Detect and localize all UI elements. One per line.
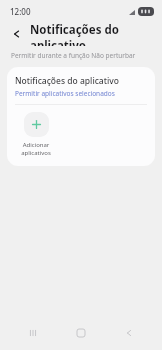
staticText: Permitir durante a função Não perturbar	[11, 51, 136, 60]
staticText: Permitir aplicativos selecionados	[15, 89, 115, 98]
staticText: Notificações do aplicativo	[15, 75, 119, 87]
staticText: Notificações do aplicativo	[30, 22, 162, 46]
staticText: 12:00	[10, 6, 31, 17]
staticText: Adicionar aplicativos	[21, 141, 51, 157]
button[interactable]: Recentes	[18, 318, 48, 348]
button[interactable]: Notificações do aplicativo	[7, 67, 155, 104]
button[interactable]: Adicionar aplicativos	[15, 112, 57, 157]
button[interactable]: Voltar	[8, 25, 26, 43]
button[interactable]: Início	[66, 318, 96, 348]
button[interactable]: Voltar	[114, 318, 144, 348]
